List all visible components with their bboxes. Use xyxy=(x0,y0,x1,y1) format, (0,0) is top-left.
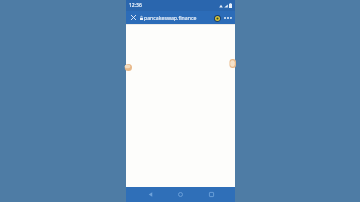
button[interactable]: Home xyxy=(174,188,187,201)
button[interactable]: Recent apps xyxy=(205,188,218,201)
button[interactable]: pancakeswap.finance xyxy=(140,14,212,21)
button[interactable]: Back xyxy=(144,188,157,201)
staticText: 12:36 xyxy=(129,2,142,9)
button[interactable]: Account xyxy=(213,14,221,22)
button[interactable]: More options xyxy=(223,13,232,22)
button[interactable]: Close xyxy=(129,13,138,22)
staticText: pancakeswap.finance xyxy=(144,14,197,21)
